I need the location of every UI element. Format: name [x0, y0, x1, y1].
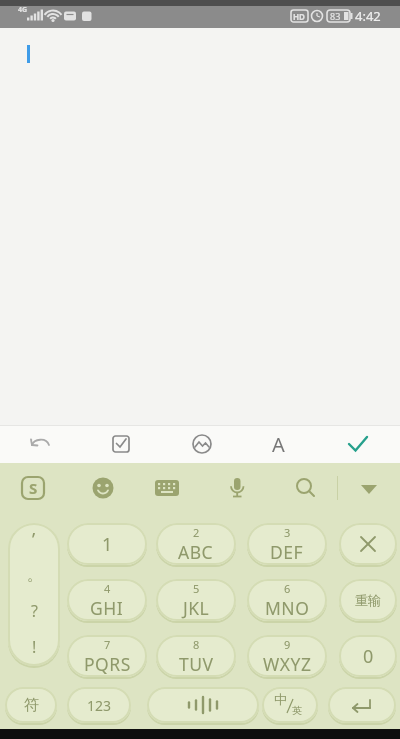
staticText: DEF: [270, 540, 304, 564]
button[interactable]: 3: [247, 523, 327, 565]
staticText: PQRS: [84, 652, 131, 676]
button[interactable]: [22, 427, 58, 461]
staticText: JKL: [183, 596, 210, 620]
staticText: 3: [284, 525, 291, 540]
staticText: A: [272, 431, 285, 458]
button[interactable]: [219, 470, 255, 506]
staticText: 9: [284, 637, 291, 652]
staticText: 83: [330, 10, 341, 22]
button[interactable]: 4: [67, 579, 147, 621]
staticText: ’: [32, 527, 36, 552]
button[interactable]: [147, 687, 259, 723]
staticText: 中: [274, 691, 287, 707]
button[interactable]: 6: [247, 579, 327, 621]
staticText: ABC: [178, 540, 214, 564]
staticText: 4G: [18, 5, 28, 15]
button[interactable]: 123: [67, 687, 131, 723]
button[interactable]: [340, 427, 376, 461]
button[interactable]: 8: [156, 635, 236, 677]
staticText: !: [32, 636, 37, 658]
button[interactable]: 0: [339, 635, 397, 677]
staticText: S: [29, 478, 38, 498]
staticText: HD: [293, 11, 305, 22]
button[interactable]: 5: [156, 579, 236, 621]
button[interactable]: 2: [156, 523, 236, 565]
staticText: 5: [193, 581, 200, 596]
staticText: 6: [284, 581, 291, 596]
button[interactable]: 1: [67, 523, 147, 565]
staticText: TUV: [179, 652, 214, 676]
staticText: MNO: [265, 596, 310, 620]
staticText: GHI: [90, 596, 124, 620]
button[interactable]: [287, 470, 323, 506]
button[interactable]: S: [15, 470, 51, 506]
button[interactable]: [0, 28, 400, 425]
button[interactable]: 中: [262, 687, 318, 723]
button[interactable]: [351, 470, 387, 506]
button[interactable]: [149, 470, 185, 506]
button[interactable]: [339, 523, 397, 565]
staticText: 0: [363, 644, 374, 669]
staticText: 符: [24, 696, 39, 715]
staticText: 8: [193, 637, 200, 652]
staticText: 重输: [355, 592, 381, 608]
button[interactable]: A: [260, 427, 296, 461]
staticText: 英: [292, 704, 302, 717]
button[interactable]: [184, 427, 220, 461]
staticText: 123: [87, 696, 112, 715]
button[interactable]: 9: [247, 635, 327, 677]
button[interactable]: [85, 470, 121, 506]
staticText: ?: [31, 600, 38, 622]
staticText: 1: [102, 532, 113, 557]
button[interactable]: 重输: [339, 579, 397, 621]
staticText: 4: [104, 581, 111, 596]
staticText: 7: [104, 637, 111, 652]
staticText: WXYZ: [263, 652, 312, 676]
staticText: 4:42: [355, 7, 381, 25]
button[interactable]: ’: [8, 523, 60, 666]
button[interactable]: [328, 687, 396, 723]
button[interactable]: [103, 427, 139, 461]
button[interactable]: 符: [5, 687, 57, 723]
button[interactable]: 7: [67, 635, 147, 677]
staticText: 2: [193, 525, 200, 540]
staticText: 。: [27, 566, 42, 585]
